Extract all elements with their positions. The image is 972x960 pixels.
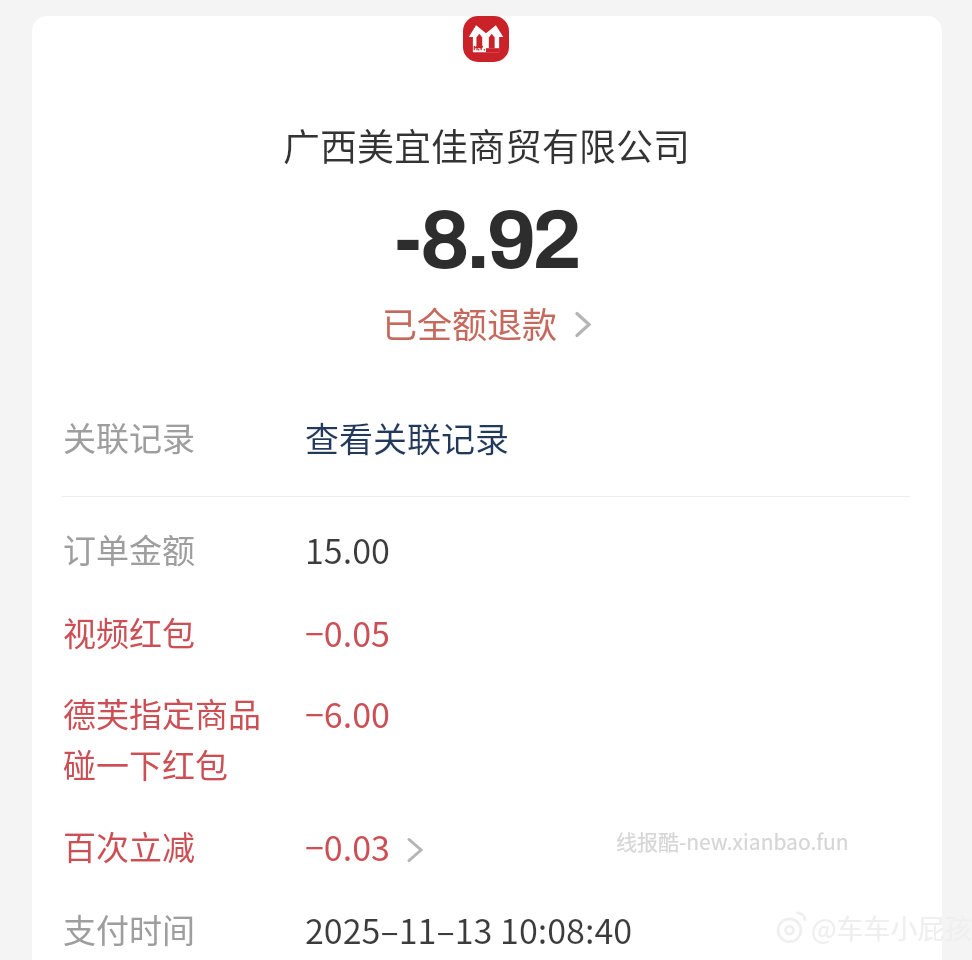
staticText: 15.00 [305, 525, 390, 574]
staticText: -8.92 [394, 194, 578, 285]
staticText: 视频红包 [63, 608, 195, 656]
button[interactable]: 百次立减 [32, 810, 942, 864]
button[interactable]: 德芙指定商品 碰一下红包 [32, 677, 942, 781]
staticText: 已全额退款 [382, 297, 558, 347]
staticText: 线报酷-new.xianbao.fun [616, 826, 849, 856]
button[interactable]: 美宜佳 商户头像 [463, 16, 509, 62]
staticText: 查看关联记录 [305, 413, 509, 462]
button[interactable]: 支付时间 [32, 893, 942, 947]
button[interactable]: 关联记录 [32, 401, 942, 455]
staticText: −0.03 [305, 822, 390, 871]
staticText: 百次立减 [63, 822, 195, 870]
staticText: 订单金额 [63, 525, 195, 573]
staticText: 广西美宜佳商贸有限公司 [283, 118, 690, 172]
staticText: 支付时间 [63, 905, 195, 953]
button[interactable]: 订单金额 [32, 513, 942, 567]
button[interactable]: 视频红包 [32, 596, 942, 650]
staticText: 关联记录 [63, 413, 195, 461]
staticText: −0.05 [305, 608, 390, 657]
staticText: @车车小屁孩 [811, 908, 972, 947]
staticText: 2025–11–13 10:08:40 [305, 905, 633, 954]
button[interactable]: 已全额退款 [378, 293, 587, 343]
staticText: −6.00 [305, 689, 390, 738]
staticText: 德芙指定商品 碰一下红包 [63, 689, 261, 787]
